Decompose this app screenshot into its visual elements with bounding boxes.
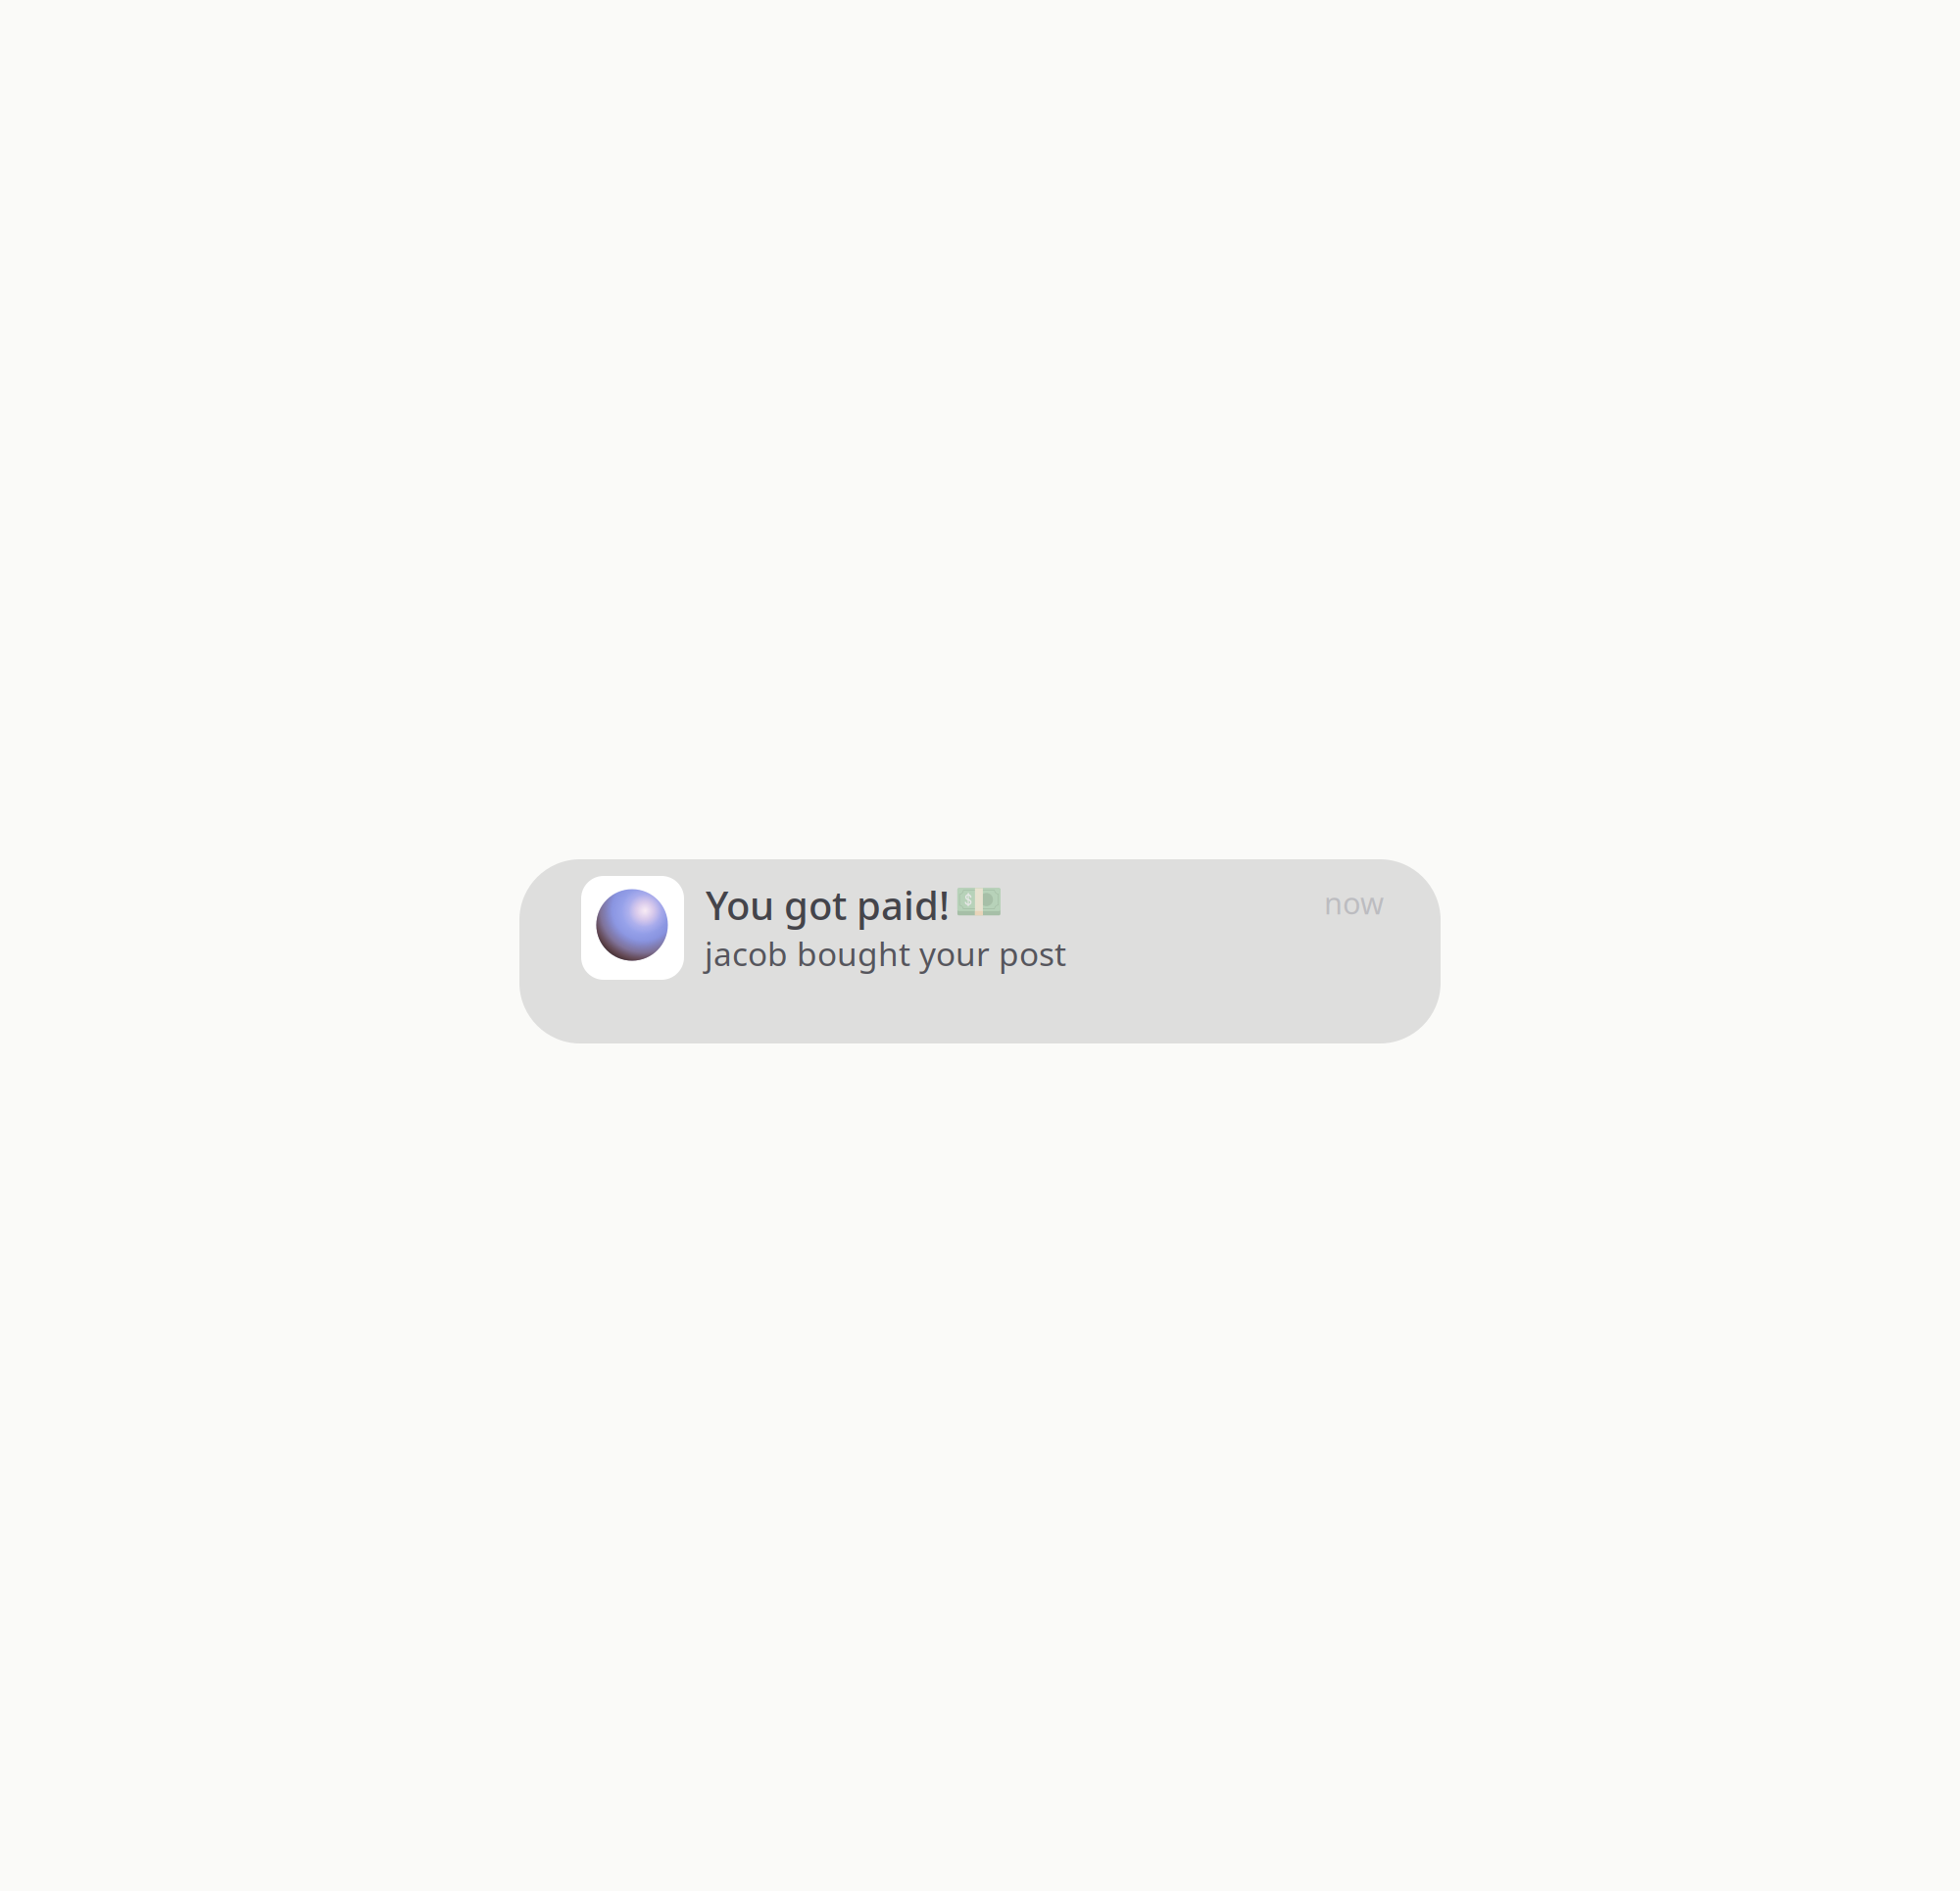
- staticText: jacob bought your post: [705, 932, 1066, 975]
- button[interactable]: You got paid!: [519, 859, 1441, 1043]
- staticText: 💵: [955, 879, 1004, 924]
- staticText: You got paid!: [706, 879, 950, 931]
- staticText: now: [1324, 883, 1384, 923]
